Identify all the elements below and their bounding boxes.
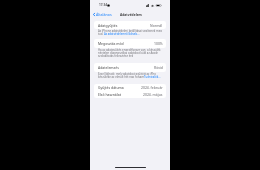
button[interactable]: Megosztás mód (94, 39, 166, 48)
button[interactable]: Gyűjtés dátuma (94, 84, 166, 91)
staticText: 100% (154, 41, 163, 46)
staticText: Ha az adatgyűjtés engedélyezve van, a ké… (98, 48, 161, 51)
staticText: Az iPhone adatvédelmi beállításai segíte… (98, 29, 162, 32)
button[interactable]: Általános (90, 11, 114, 18)
staticText: 2024. február (141, 85, 163, 90)
other: Home indicator (115, 167, 146, 168)
staticText: Gyűjtés dátuma (98, 85, 124, 90)
button[interactable]: Első használat (94, 91, 166, 98)
staticText: Normál (150, 23, 163, 28)
button[interactable]: Adatelemzés (94, 63, 166, 72)
staticText: tud. Az adatvédelemről bőveb… (98, 32, 140, 35)
staticText: Adatvédelem (120, 12, 142, 16)
staticText: Első használat (98, 92, 121, 97)
staticText: Megosztás mód (98, 41, 124, 46)
staticText: szolgáltatás fejlesztése érd (98, 54, 134, 57)
staticText: Rövid (154, 65, 163, 70)
staticText: 17:34 (99, 3, 107, 7)
staticText: Adatgyűjtés (98, 23, 118, 28)
staticText: Ezzel látható, mely adatokat gyűjtött az… (98, 72, 156, 75)
staticText: készüléke az elmúlt hét nap folyamTudniv… (98, 75, 161, 78)
staticText: névtelen diagnosztikai adatokat küld az … (98, 51, 158, 54)
staticText: 2024. május (143, 92, 163, 97)
staticText: Általános (96, 12, 112, 17)
button[interactable]: Adatgyűjtés (94, 21, 166, 29)
staticText: Adatelemzés (98, 65, 119, 70)
